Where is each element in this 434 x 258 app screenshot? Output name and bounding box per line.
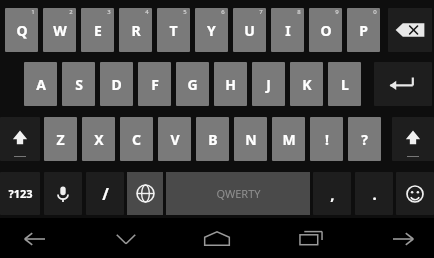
staticText: E (94, 21, 102, 40)
button[interactable]: D (100, 62, 133, 106)
button[interactable]: ! (310, 117, 343, 161)
staticText: C (132, 130, 141, 149)
staticText: A (36, 75, 46, 94)
button[interactable]: Forward (378, 226, 430, 252)
button[interactable]: V (158, 117, 191, 161)
button[interactable]: M (272, 117, 305, 161)
staticText: , (330, 184, 335, 204)
button[interactable]: K (290, 62, 323, 106)
button[interactable]: Voice input (44, 172, 82, 215)
staticText: N (245, 130, 257, 149)
staticText: F (151, 75, 159, 94)
staticText: O (320, 21, 332, 40)
staticText: 9 (335, 8, 339, 16)
staticText: I (285, 21, 291, 40)
button[interactable]: 5 (157, 8, 190, 52)
button[interactable]: 0 (347, 8, 380, 52)
button[interactable]: Z (44, 117, 77, 161)
button[interactable]: 2 (43, 8, 76, 52)
button[interactable]: Backspace (388, 8, 432, 52)
button[interactable]: Enter (374, 62, 432, 106)
staticText: L (341, 75, 349, 94)
button[interactable]: Shift (392, 117, 434, 161)
button[interactable]: A (24, 62, 57, 106)
staticText: R (131, 21, 141, 40)
staticText: T (169, 21, 178, 40)
staticText: 0 (373, 8, 377, 16)
staticText: U (244, 21, 255, 40)
staticText: 5 (183, 8, 187, 16)
button[interactable]: S (62, 62, 95, 106)
button[interactable]: Emoji (396, 172, 434, 215)
button[interactable]: QWERTY (166, 172, 310, 215)
button[interactable]: Slash (86, 172, 124, 215)
button[interactable]: Period (355, 172, 393, 215)
button[interactable]: 1 (5, 8, 38, 52)
staticText: ?123 (8, 186, 33, 201)
staticText: . (372, 184, 377, 204)
staticText: Y (207, 21, 216, 40)
staticText: 2 (69, 8, 73, 16)
staticText: / (102, 183, 109, 205)
staticText: ? (361, 130, 368, 149)
staticText: 3 (107, 8, 111, 16)
staticText: J (266, 75, 271, 94)
button[interactable]: J (252, 62, 285, 106)
button[interactable]: H (214, 62, 247, 106)
button[interactable]: 6 (195, 8, 228, 52)
staticText: ! (325, 130, 329, 149)
staticText: 1 (31, 8, 35, 16)
staticText: K (302, 75, 312, 94)
button[interactable]: 9 (309, 8, 342, 52)
staticText: Z (56, 130, 65, 149)
button[interactable]: B (196, 117, 229, 161)
staticText: G (187, 75, 198, 94)
button[interactable]: G (176, 62, 209, 106)
button[interactable]: Back (8, 226, 60, 252)
button[interactable]: 4 (119, 8, 152, 52)
button[interactable]: L (328, 62, 361, 106)
staticText: 4 (145, 8, 149, 16)
staticText: 7 (259, 8, 263, 16)
staticText: P (359, 21, 368, 40)
staticText: 6 (221, 8, 225, 16)
button[interactable]: 7 (233, 8, 266, 52)
button[interactable]: Comma (313, 172, 351, 215)
button[interactable]: Home (190, 224, 244, 252)
button[interactable]: X (82, 117, 115, 161)
staticText: QWERTY (216, 186, 261, 201)
button[interactable]: 8 (271, 8, 304, 52)
button[interactable]: F (138, 62, 171, 106)
button[interactable]: C (120, 117, 153, 161)
staticText: S (75, 75, 83, 94)
button[interactable]: Change keyboard language (127, 172, 163, 215)
staticText: D (111, 75, 122, 94)
button[interactable]: Recent apps (285, 224, 337, 252)
staticText: B (208, 130, 218, 149)
staticText: M (282, 130, 296, 149)
button[interactable]: Symbols (0, 172, 40, 215)
staticText: W (53, 21, 67, 40)
button[interactable]: Shift (0, 117, 40, 161)
button[interactable]: 3 (81, 8, 114, 52)
staticText: 8 (297, 8, 301, 16)
staticText: H (225, 75, 236, 94)
button[interactable]: Hide keyboard (100, 226, 152, 252)
staticText: V (170, 130, 180, 149)
button[interactable]: ? (348, 117, 381, 161)
staticText: Q (16, 21, 28, 40)
button[interactable]: N (234, 117, 267, 161)
staticText: X (94, 130, 104, 149)
